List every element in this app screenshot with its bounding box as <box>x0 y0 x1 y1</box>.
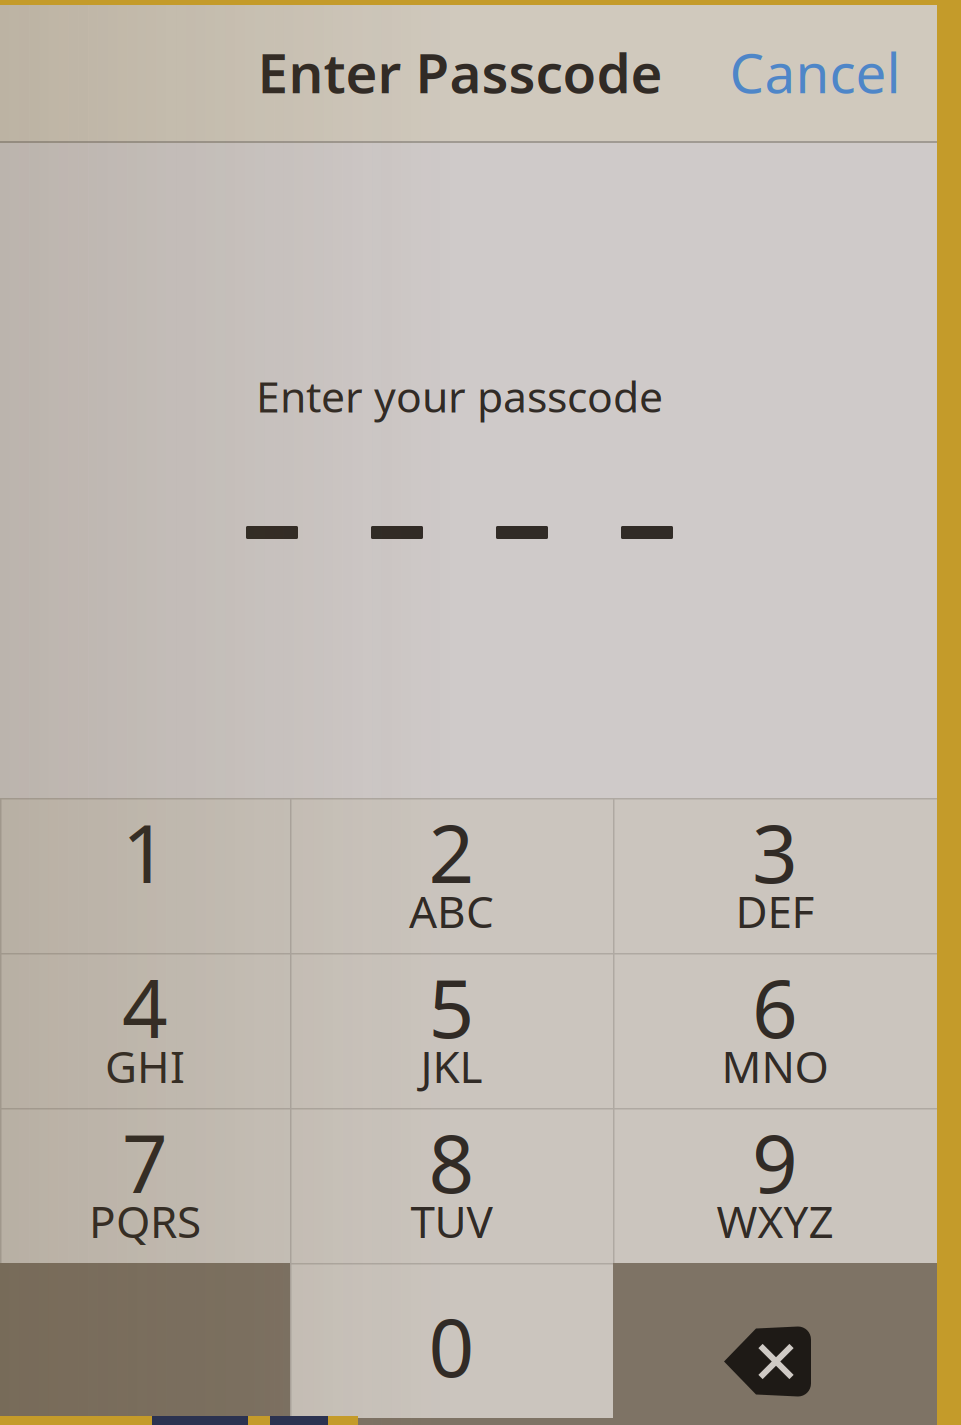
button[interactable]: 7 <box>0 1108 290 1263</box>
staticText: Enter your passcode <box>256 368 663 424</box>
button[interactable]: Cancel <box>715 44 915 100</box>
staticText: 2 <box>428 799 474 905</box>
staticText: 7 <box>122 1109 168 1215</box>
staticText: GHI <box>105 1037 185 1095</box>
button[interactable]: 1 <box>0 798 290 953</box>
staticText: JKL <box>420 1037 482 1095</box>
staticText: TUV <box>410 1192 492 1250</box>
staticText: WXYZ <box>716 1192 833 1250</box>
staticText: Enter Passcode <box>257 36 662 108</box>
button[interactable]: 0 <box>290 1263 613 1418</box>
button[interactable]: Delete <box>613 1263 937 1418</box>
staticText: 8 <box>428 1109 474 1215</box>
staticText: 4 <box>122 954 168 1060</box>
staticText: 9 <box>752 1109 798 1215</box>
staticText: 6 <box>752 954 798 1060</box>
staticText: PQRS <box>89 1192 201 1250</box>
button[interactable]: 2 <box>290 798 613 953</box>
staticText: MNO <box>721 1037 828 1095</box>
button[interactable]: 8 <box>290 1108 613 1263</box>
staticText: Cancel <box>729 36 900 108</box>
staticText: 0 <box>428 1293 474 1399</box>
staticText: 5 <box>428 954 474 1060</box>
staticText: DEF <box>735 882 814 940</box>
staticText: ABC <box>409 882 494 940</box>
button[interactable]: 5 <box>290 953 613 1108</box>
button[interactable]: 9 <box>613 1108 937 1263</box>
button[interactable]: 4 <box>0 953 290 1108</box>
staticText: 1 <box>122 799 168 905</box>
button[interactable]: 6 <box>613 953 937 1108</box>
staticText: 3 <box>752 799 798 905</box>
button[interactable]: 3 <box>613 798 937 953</box>
